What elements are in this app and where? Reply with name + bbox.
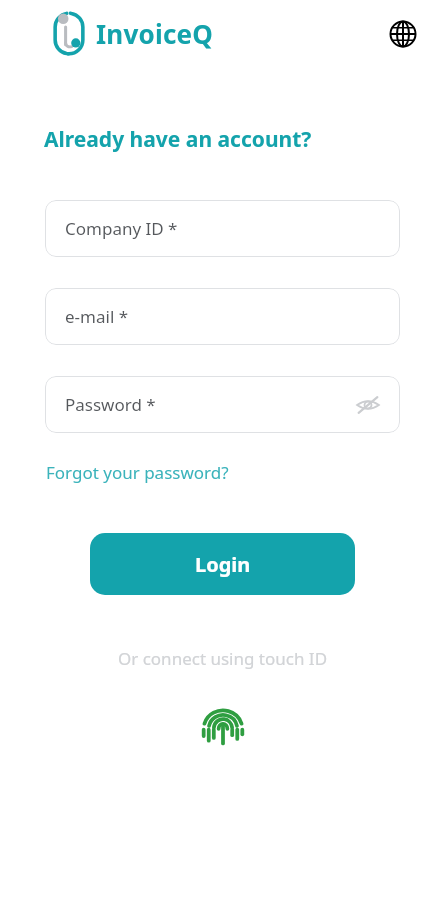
button[interactable]: e-mail * — [45, 288, 400, 345]
button[interactable]: Change language — [381, 12, 425, 56]
staticText: Password * — [65, 393, 156, 416]
button[interactable]: Password * — [45, 376, 400, 433]
button[interactable]: Forgot your password? — [44, 457, 231, 488]
staticText: e-mail * — [65, 305, 129, 328]
other: Show password — [352, 389, 384, 421]
staticText: Or connect using touch ID — [0, 647, 445, 670]
staticText: Forgot your password? — [46, 461, 229, 484]
staticText: Company ID * — [65, 217, 178, 240]
button[interactable]: Company ID * — [45, 200, 400, 257]
button[interactable]: Login — [90, 533, 355, 595]
staticText: InvoiceQ — [96, 16, 213, 51]
staticText: Already have an account? — [44, 125, 312, 154]
staticText: Login — [195, 551, 251, 578]
button[interactable]: Login with fingerprint — [195, 698, 251, 754]
